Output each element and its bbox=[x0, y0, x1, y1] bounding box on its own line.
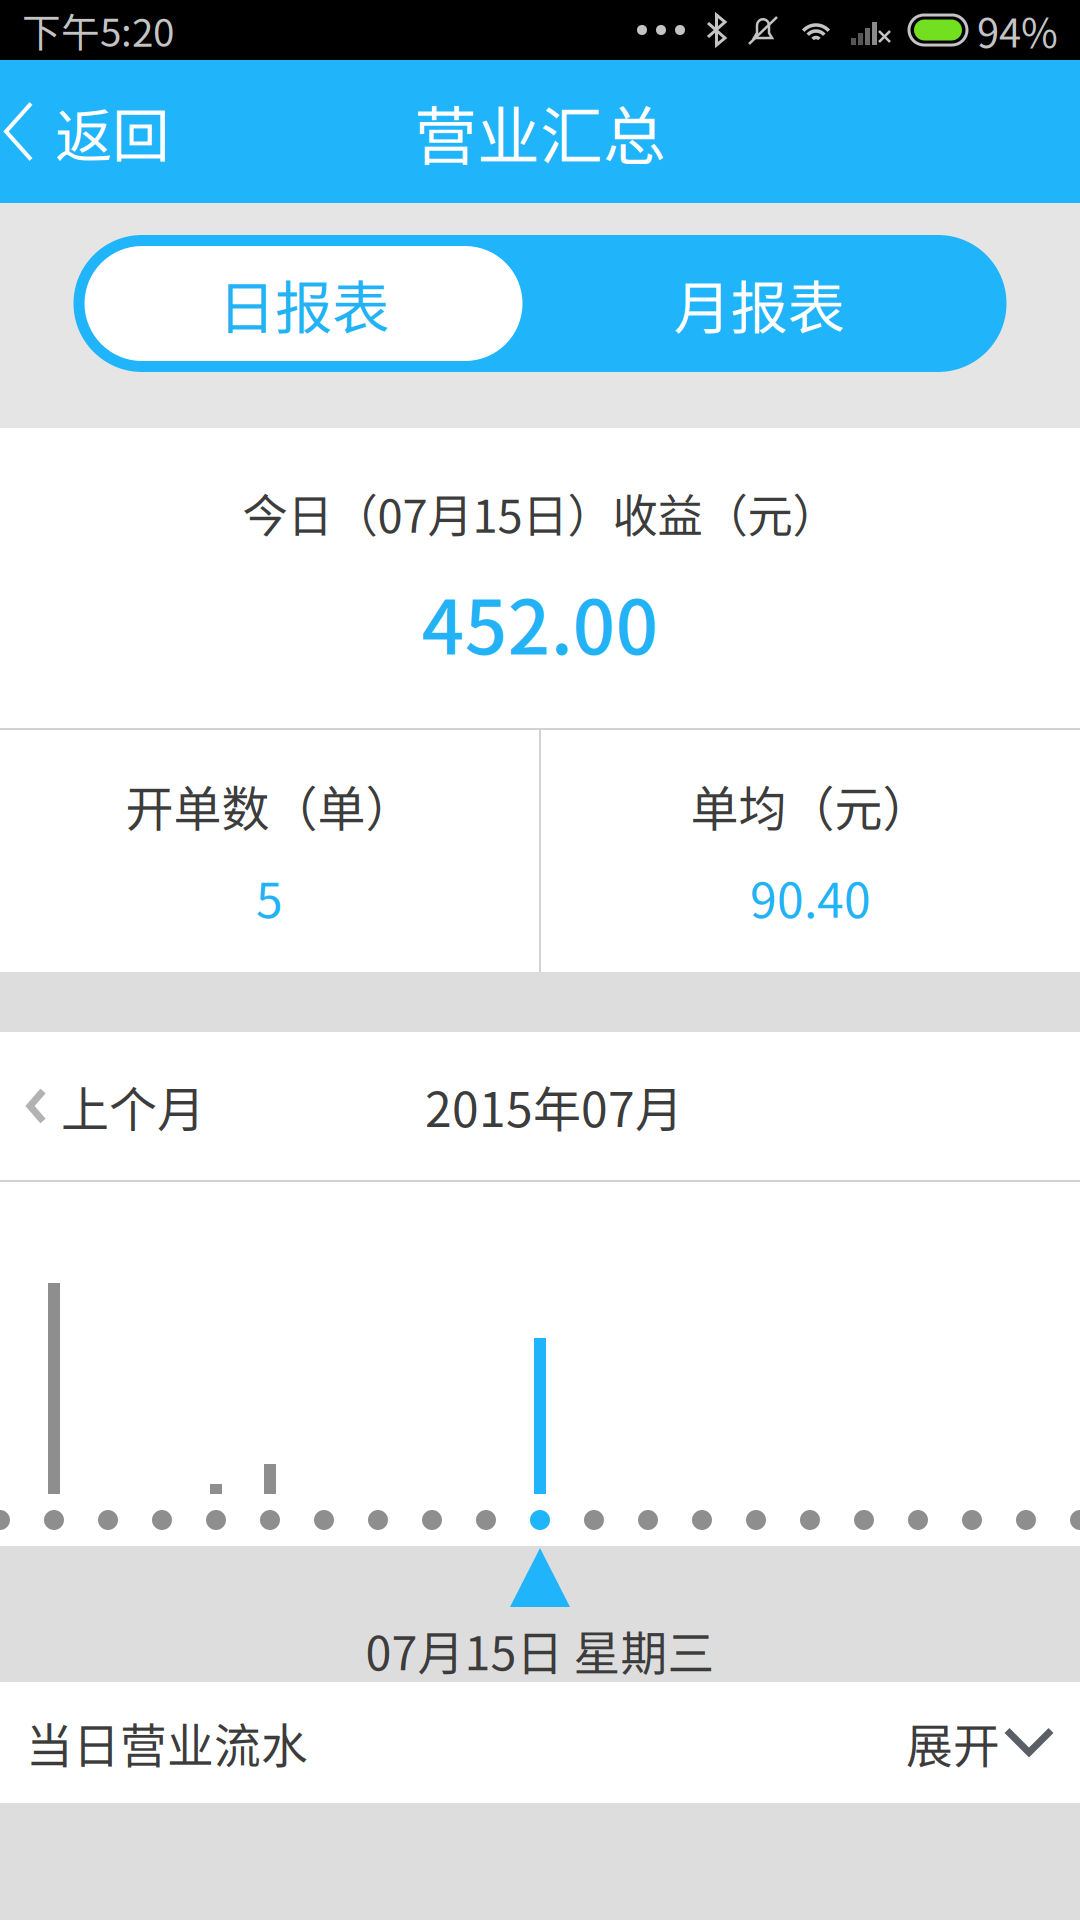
button[interactable]: 当日营业流水 bbox=[0, 1682, 1080, 1803]
button[interactable]: 上个月 bbox=[0, 1032, 235, 1180]
staticText: 07月15日 星期三 bbox=[365, 1616, 714, 1684]
staticText: 单均（元） bbox=[690, 770, 930, 840]
staticText: 90.40 bbox=[750, 862, 871, 931]
staticText: 94% bbox=[977, 1, 1058, 59]
staticText: 5 bbox=[256, 862, 283, 931]
staticText: 下午5:20 bbox=[22, 2, 174, 58]
staticText: 日报表 bbox=[218, 262, 389, 345]
staticText: 月报表 bbox=[673, 262, 844, 345]
staticText: 上个月 bbox=[61, 1071, 205, 1141]
staticText: 2015年07月 bbox=[425, 1071, 683, 1141]
button[interactable]: 日报表 bbox=[84, 246, 522, 361]
button[interactable]: 返回 bbox=[0, 60, 195, 203]
staticText: 今日（07月15日）收益（元） bbox=[242, 480, 837, 546]
staticText: 返回 bbox=[55, 90, 169, 173]
staticText: 当日营业流水 bbox=[26, 1709, 308, 1776]
staticText: 营业汇总 bbox=[414, 86, 666, 177]
staticText: 开单数（单） bbox=[125, 770, 413, 840]
button[interactable]: 月报表 bbox=[522, 246, 995, 361]
staticText: 展开 bbox=[906, 1709, 1000, 1776]
staticText: 452.00 bbox=[421, 568, 658, 676]
